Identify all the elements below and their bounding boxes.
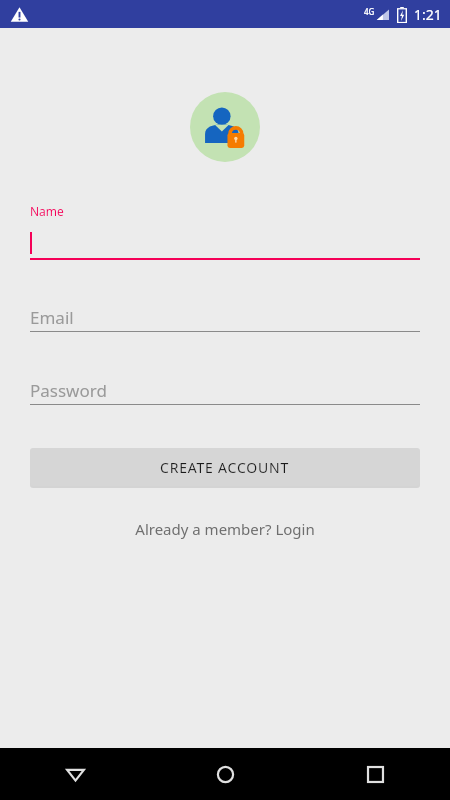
staticText: 1:21 — [414, 5, 442, 24]
staticText: 4G — [364, 6, 375, 17]
button[interactable]: Already a member? Login — [123, 515, 327, 543]
staticText: CREATE ACCOUNT — [160, 458, 290, 477]
other: Secure account avatar — [190, 92, 260, 162]
button[interactable]: Back — [0, 748, 150, 800]
button[interactable]: Email — [30, 304, 420, 332]
button[interactable]: Recent apps — [300, 748, 450, 800]
button[interactable]: CREATE ACCOUNT — [30, 448, 420, 486]
staticText: Already a member? Login — [135, 519, 315, 539]
button[interactable]: Home — [150, 748, 300, 800]
staticText: Name — [30, 203, 64, 219]
button[interactable]: Password — [30, 377, 420, 405]
button[interactable]: Name — [30, 203, 420, 260]
staticText: Email — [30, 306, 74, 329]
staticText: Password — [30, 379, 107, 402]
